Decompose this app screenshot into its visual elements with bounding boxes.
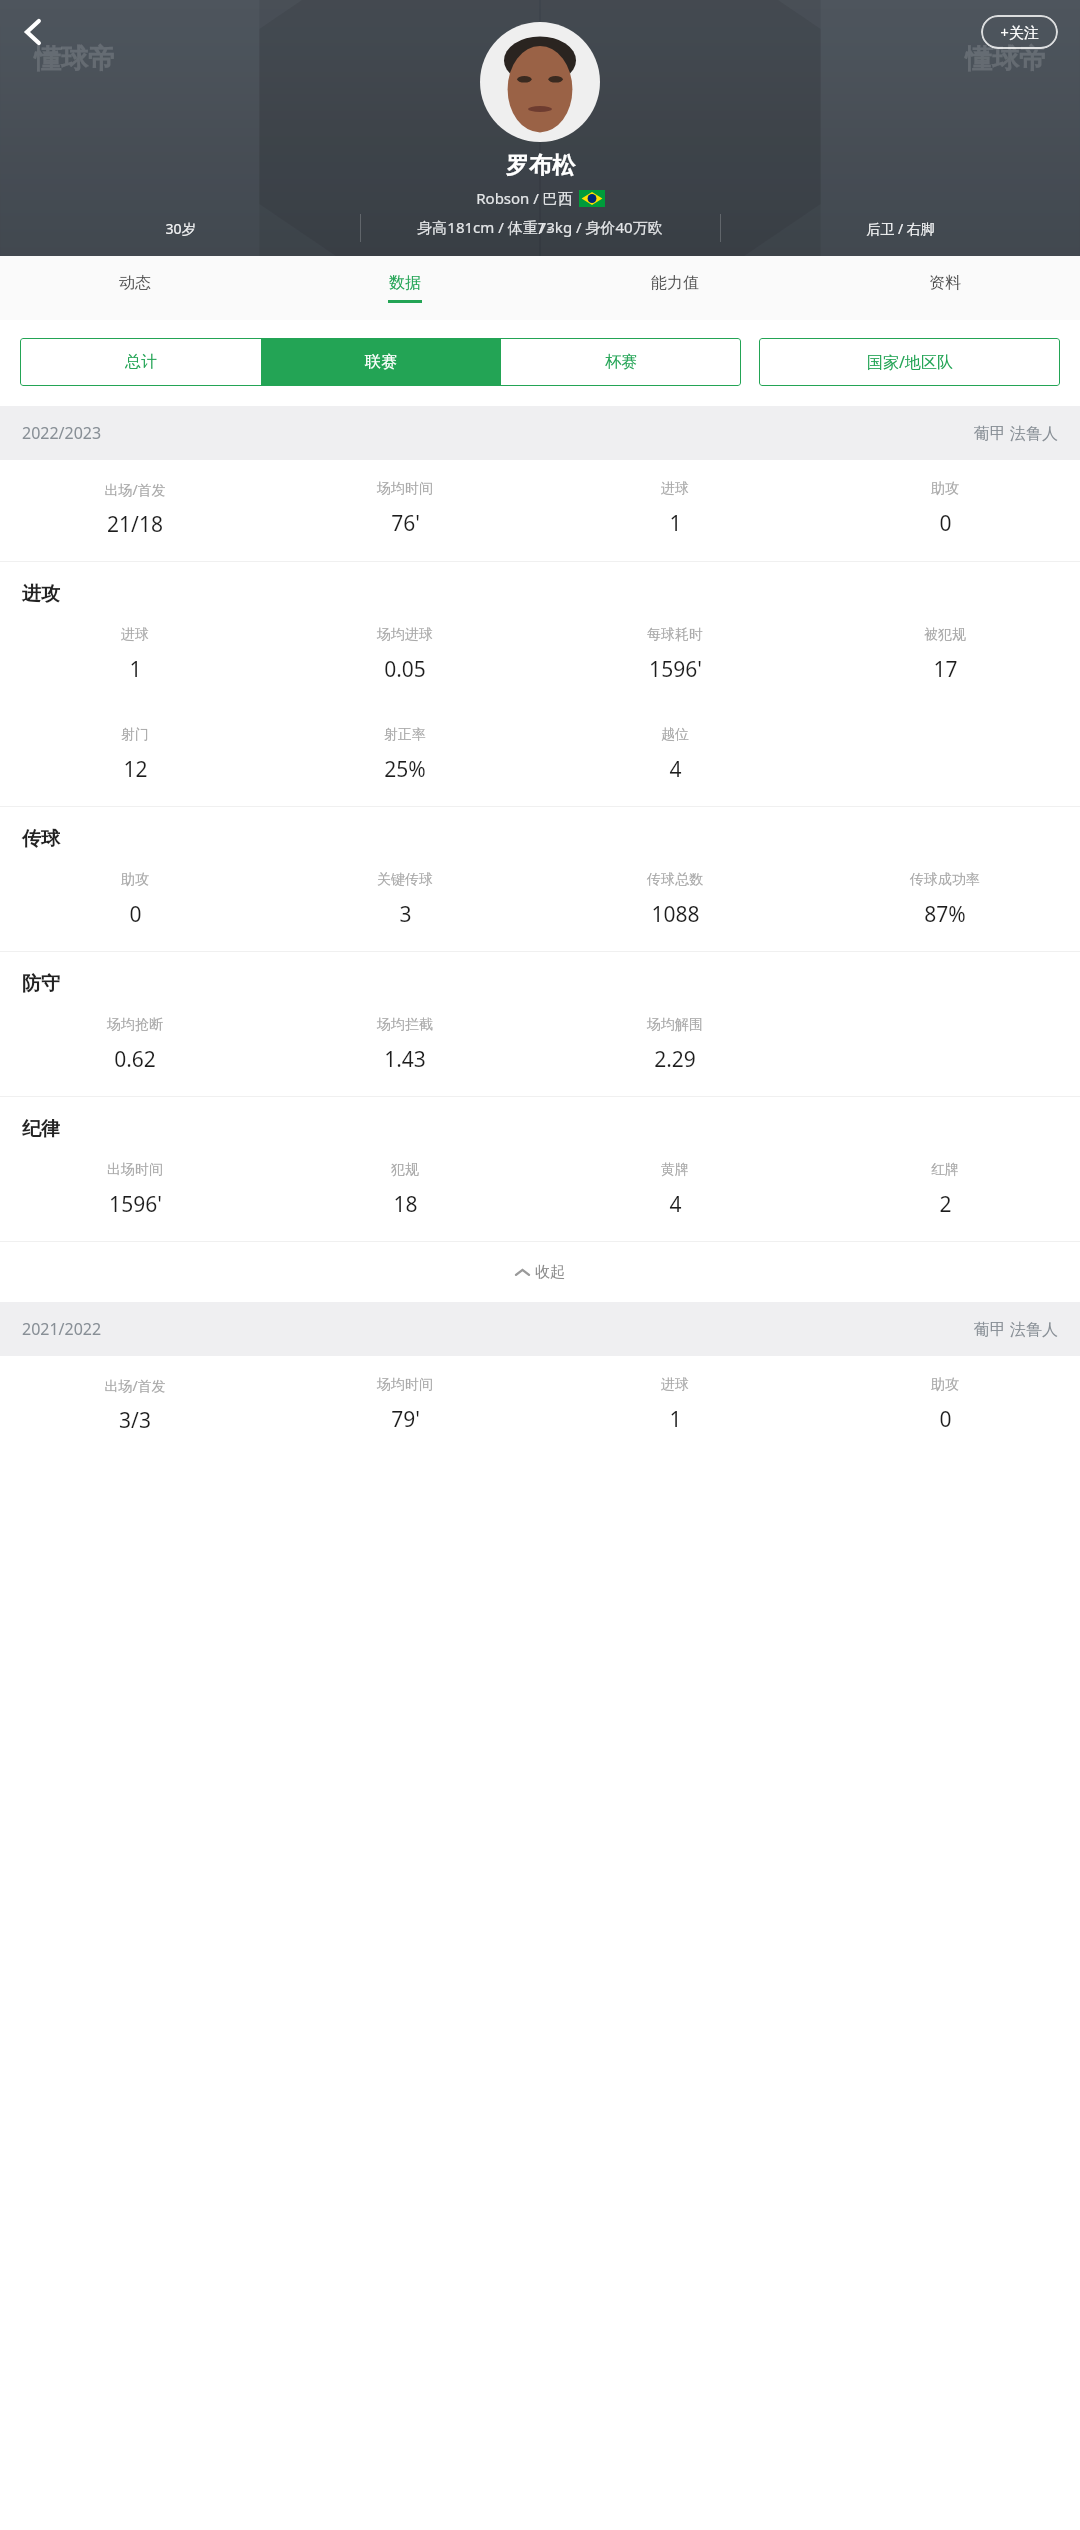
staticText: 2021/2022 bbox=[22, 1318, 102, 1340]
staticText: 罗布松 bbox=[506, 151, 575, 180]
staticText: 数据 bbox=[389, 273, 421, 293]
staticText: 助攻 bbox=[931, 480, 959, 498]
staticText: 0.05 bbox=[384, 655, 426, 684]
staticText: 场均拦截 bbox=[377, 1016, 433, 1034]
button[interactable]: 总计 bbox=[20, 338, 261, 386]
staticText: 出场/首发 bbox=[104, 1376, 166, 1395]
staticText: 总计 bbox=[125, 352, 157, 372]
staticText: 黄牌 bbox=[661, 1161, 689, 1179]
button[interactable]: 动态 bbox=[0, 256, 270, 320]
button[interactable]: 数据 bbox=[270, 256, 540, 320]
staticText: 葡甲 法鲁人 bbox=[973, 422, 1058, 444]
staticText: 进球 bbox=[121, 626, 149, 644]
staticText: 收起 bbox=[535, 1263, 565, 1282]
button[interactable]: 资料 bbox=[810, 256, 1080, 320]
staticText: 1.43 bbox=[384, 1045, 426, 1074]
staticText: 进球 bbox=[661, 480, 689, 498]
staticText: 1 bbox=[669, 509, 682, 538]
staticText: 0.62 bbox=[114, 1045, 156, 1074]
staticText: 国家/地区队 bbox=[867, 351, 953, 373]
staticText: 0 bbox=[129, 900, 142, 929]
staticText: 射正率 bbox=[384, 726, 426, 744]
staticText: 2 bbox=[939, 1190, 952, 1219]
staticText: 2022/2023 bbox=[22, 422, 102, 444]
staticText: 进攻 bbox=[22, 582, 60, 606]
staticText: 2.29 bbox=[654, 1045, 696, 1074]
button[interactable]: 国家/地区队 bbox=[759, 338, 1060, 386]
staticText: - / - bbox=[530, 219, 552, 238]
staticText: 1596' bbox=[649, 655, 702, 684]
button[interactable]: +关注 bbox=[981, 15, 1058, 49]
staticText: 传球总数 bbox=[647, 871, 703, 889]
staticText: 出场时间 bbox=[107, 1161, 163, 1179]
staticText: Robson / 巴西 bbox=[476, 188, 573, 208]
staticText: 场均时间 bbox=[377, 1376, 433, 1394]
staticText: 被犯规 bbox=[924, 626, 966, 644]
staticText: 出场/首发 bbox=[104, 480, 166, 499]
staticText: 每球耗时 bbox=[647, 626, 703, 644]
staticText: 场均抢断 bbox=[107, 1016, 163, 1034]
staticText: 1 bbox=[669, 1405, 682, 1434]
staticText: 30岁 bbox=[165, 219, 196, 238]
staticText: 4 bbox=[669, 755, 682, 784]
button[interactable]: 收起 bbox=[0, 1242, 1080, 1302]
staticText: 12 bbox=[123, 755, 148, 784]
button[interactable]: Back bbox=[6, 4, 62, 60]
staticText: 传球 bbox=[22, 827, 60, 851]
staticText: 场均时间 bbox=[377, 480, 433, 498]
staticText: 犯规 bbox=[391, 1161, 419, 1179]
staticText: 身高181cm / 体重73kg / 身价40万欧 bbox=[417, 217, 663, 237]
staticText: 葡甲 法鲁人 bbox=[973, 1318, 1058, 1340]
staticText: +关注 bbox=[1000, 22, 1039, 42]
staticText: 18 bbox=[393, 1190, 418, 1219]
staticText: 纪律 bbox=[22, 1117, 60, 1141]
staticText: 3 bbox=[399, 900, 412, 929]
staticText: 懂球帝 bbox=[965, 42, 1046, 76]
staticText: 关键传球 bbox=[377, 871, 433, 889]
staticText: 1596' bbox=[109, 1190, 162, 1219]
staticText: 助攻 bbox=[121, 871, 149, 889]
staticText: 射门 bbox=[121, 726, 149, 744]
staticText: 动态 bbox=[119, 273, 151, 293]
staticText: 0 bbox=[939, 1405, 952, 1434]
staticText: 3/3 bbox=[119, 1406, 151, 1435]
button[interactable]: 能力值 bbox=[540, 256, 810, 320]
staticText: 进球 bbox=[661, 1376, 689, 1394]
staticText: 越位 bbox=[661, 726, 689, 744]
staticText: 杯赛 bbox=[605, 352, 637, 372]
staticText: 1 bbox=[129, 655, 142, 684]
staticText: 能力值 bbox=[651, 273, 699, 293]
staticText: 防守 bbox=[22, 972, 60, 996]
staticText: 联赛 bbox=[365, 352, 397, 372]
staticText: 76' bbox=[391, 509, 420, 538]
button[interactable]: 联赛 bbox=[261, 338, 501, 386]
staticText: 1088 bbox=[651, 900, 700, 929]
staticText: 4 bbox=[669, 1190, 682, 1219]
staticText: 懂球帝 bbox=[34, 42, 115, 76]
staticText: 传球成功率 bbox=[910, 871, 980, 889]
staticText: 红牌 bbox=[931, 1161, 959, 1179]
staticText: 17 bbox=[933, 655, 958, 684]
staticText: 场均进球 bbox=[377, 626, 433, 644]
staticText: 助攻 bbox=[931, 1376, 959, 1394]
staticText: 21/18 bbox=[107, 510, 163, 539]
staticText: 0 bbox=[939, 509, 952, 538]
button[interactable]: 杯赛 bbox=[501, 338, 741, 386]
staticText: 87% bbox=[924, 900, 966, 929]
staticText: 25% bbox=[384, 755, 426, 784]
staticText: 资料 bbox=[929, 273, 961, 293]
staticText: 79' bbox=[391, 1405, 420, 1434]
staticText: 后卫 / 右脚 bbox=[866, 219, 935, 238]
staticText: 场均解围 bbox=[647, 1016, 703, 1034]
